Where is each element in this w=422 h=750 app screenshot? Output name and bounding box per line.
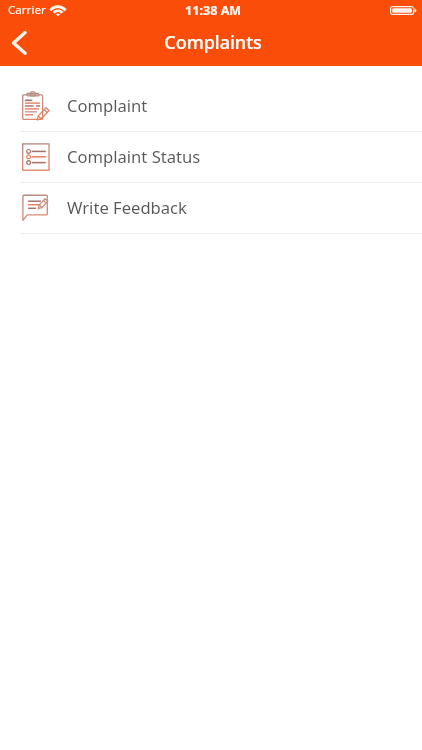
button[interactable]: Back xyxy=(4,26,40,62)
staticText: Carrier xyxy=(8,2,46,18)
staticText: Complaint xyxy=(67,94,148,117)
button[interactable]: Write Feedback xyxy=(0,183,422,233)
staticText: 11:38 AM xyxy=(185,2,242,19)
staticText: Write Feedback xyxy=(67,196,187,219)
staticText: Complaint Status xyxy=(67,145,201,168)
button[interactable]: Complaint Status xyxy=(0,132,422,182)
staticText: Complaints xyxy=(164,30,262,55)
button[interactable]: Complaint xyxy=(0,81,422,131)
